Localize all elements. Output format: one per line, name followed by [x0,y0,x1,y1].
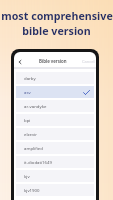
staticText: elzevir [24,131,37,137]
staticText: asv [24,89,31,95]
staticText: kjv [24,173,30,179]
button[interactable]: kjv1900 [16,184,94,196]
staticText: most comprehensive [1,9,113,24]
button[interactable]: Back [15,57,24,66]
button[interactable]: bpi [16,114,94,126]
staticText: Bible version [39,58,67,64]
button[interactable]: it-diodati1649 [16,156,94,168]
staticText: kjv1900 [24,187,40,193]
staticText: bpi [24,117,31,123]
staticText: it-diodati1649 [24,159,52,165]
staticText: ar-vandyke [24,103,47,109]
staticText: darby [24,75,36,81]
button[interactable]: ar-vandyke [16,100,94,112]
button[interactable]: darby [16,72,94,84]
button[interactable]: asv [16,86,94,98]
button[interactable]: Cancel [81,57,95,66]
button[interactable]: kjv [16,170,94,182]
staticText: Cancel [82,59,95,64]
staticText: amplified [24,145,43,151]
staticText: bible version [22,24,91,39]
button[interactable]: amplified [16,142,94,154]
button[interactable]: elzevir [16,128,94,140]
